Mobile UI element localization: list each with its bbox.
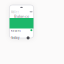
button[interactable]: Recent [11, 29, 21, 32]
staticText: Wallet [11, 10, 19, 14]
button[interactable]: Add [30, 29, 32, 31]
button[interactable]: More [30, 11, 33, 12]
button[interactable]: Wallet [11, 10, 19, 14]
staticText: Recent [11, 29, 21, 32]
button[interactable]: Today [11, 36, 19, 39]
staticText: Balance [14, 13, 29, 19]
button[interactable]: Balance card [9, 18, 33, 28]
staticText: Today [11, 36, 19, 39]
